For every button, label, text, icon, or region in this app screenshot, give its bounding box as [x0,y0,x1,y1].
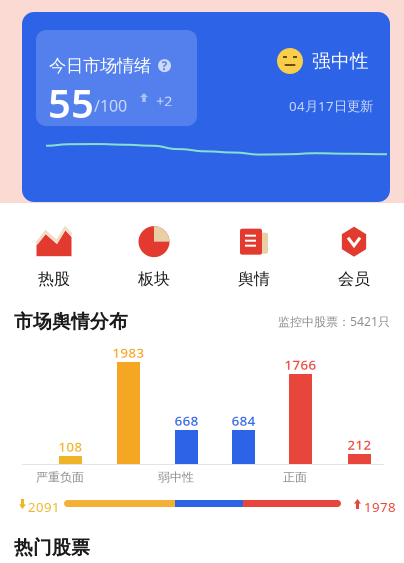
staticText: 55 [48,76,94,129]
staticText: 会员 [338,269,370,289]
staticText: 板块 [138,269,170,289]
button[interactable]: 会员 [304,229,404,287]
staticText: 2091 [28,498,60,516]
staticText: 668 [174,412,198,429]
staticText: 强中性 [312,49,369,72]
staticText: 弱中性 [158,470,194,485]
staticText: 1983 [112,344,144,361]
staticText: 684 [231,412,255,429]
staticText: 04月17日更新 [289,97,373,115]
staticText: 正面 [283,470,307,485]
staticText: +2 [156,91,172,110]
button[interactable]: 舆情 [204,229,304,287]
staticText: 1766 [284,356,316,373]
staticText: 监控中股票：5421只 [278,313,390,329]
staticText: 热股 [38,269,70,289]
staticText: 严重负面 [36,470,84,485]
button[interactable]: 热股 [4,229,104,287]
staticText: 108 [58,438,82,455]
staticText: 212 [347,436,371,453]
button[interactable]: 板块 [104,229,204,287]
staticText: 市场舆情分布 [14,310,128,333]
staticText: 舆情 [238,269,270,289]
staticText: 今日市场情绪 [49,55,151,76]
staticText: /100 [94,95,127,116]
staticText: ? [161,58,167,74]
staticText: 1978 [364,498,396,516]
staticText: 热门股票 [14,536,90,559]
